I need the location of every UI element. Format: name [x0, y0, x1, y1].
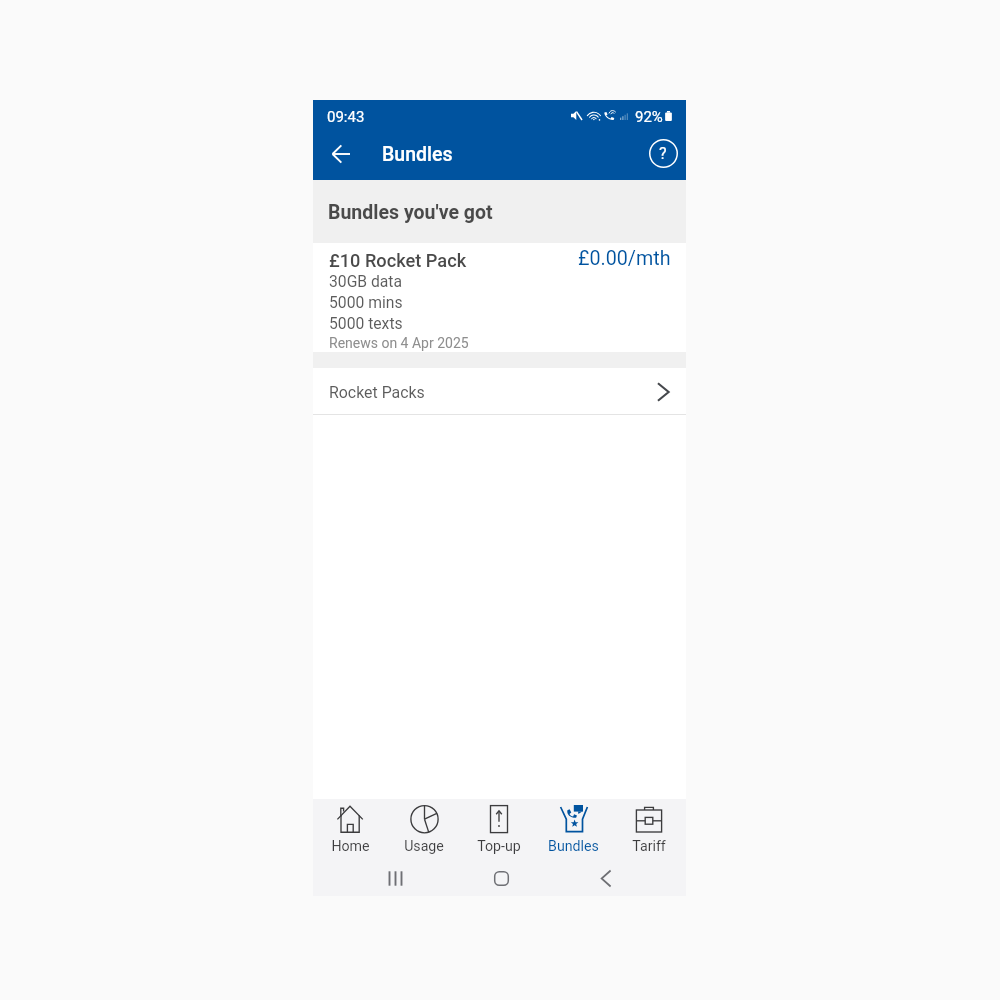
staticText: Renews on 4 Apr 2025 — [329, 335, 469, 351]
staticText: £10 Rocket Pack — [329, 250, 467, 271]
staticText: Top-up — [477, 838, 521, 855]
staticText: 5000 texts — [329, 314, 403, 332]
button[interactable]: Usage — [387, 799, 461, 860]
staticText: Tariff — [632, 838, 666, 855]
staticText: 92% — [635, 108, 663, 126]
staticText: Home — [331, 838, 370, 855]
staticText: Usage — [404, 838, 444, 855]
staticText: Bundles — [382, 143, 453, 166]
staticText: Rocket Packs — [329, 383, 425, 402]
staticText: 30GB data — [329, 272, 403, 290]
button[interactable]: £10 Rocket Pack — [313, 243, 686, 352]
button[interactable]: Recent apps — [377, 864, 413, 892]
staticText: ? — [659, 144, 667, 163]
button[interactable]: Home — [483, 864, 520, 892]
staticText: Bundles — [548, 838, 599, 855]
button[interactable]: Back — [322, 135, 360, 173]
button[interactable]: Tariff — [611, 799, 686, 860]
staticText: £0.00/mth — [578, 247, 671, 270]
button[interactable]: Bundles — [536, 799, 611, 860]
button[interactable]: Home — [313, 799, 387, 860]
staticText: 09:43 — [327, 108, 365, 126]
button[interactable]: Rocket Packs — [313, 368, 686, 414]
button[interactable]: Top-up — [461, 799, 536, 860]
staticText: 5000 mins — [329, 293, 403, 311]
button[interactable]: Help — [643, 133, 683, 173]
staticText: Bundles you've got — [328, 201, 493, 224]
button[interactable]: Back — [588, 864, 624, 892]
